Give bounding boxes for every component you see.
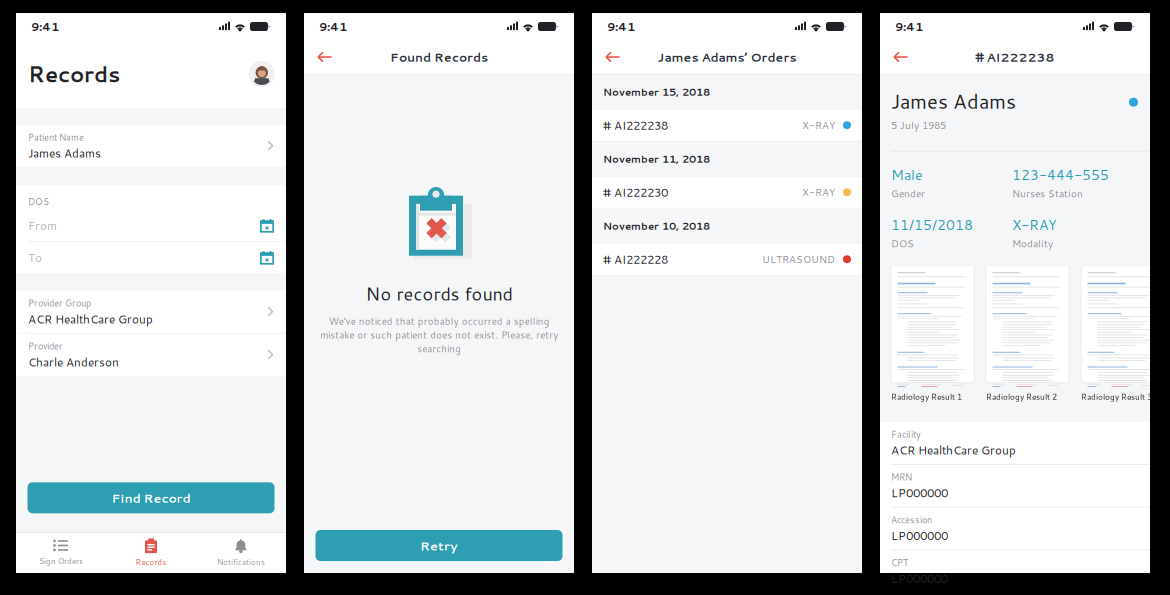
staticText: Facility (891, 428, 921, 441)
staticText: Provider Group (28, 297, 91, 309)
button[interactable]: Profile (250, 62, 274, 86)
staticText: Found Records (390, 48, 488, 66)
staticText: November 11, 2018 (603, 151, 710, 166)
staticText: ACR HealthCare Group (891, 442, 1016, 458)
staticText: Nurses Station (1012, 186, 1083, 201)
staticText: Provider (28, 340, 63, 352)
staticText: Accession (891, 513, 932, 526)
staticText: November 10, 2018 (603, 218, 710, 233)
staticText: James Adams (28, 145, 101, 161)
staticText: Patient Name (28, 131, 84, 144)
staticText: DOS (891, 236, 914, 251)
staticText: To (28, 249, 42, 266)
staticText: November 15, 2018 (603, 84, 710, 99)
button[interactable]: Back (304, 40, 346, 74)
button[interactable]: Find Record (27, 482, 274, 513)
staticText: MRN (891, 470, 912, 483)
staticText: Records (135, 556, 166, 567)
staticText: 9:41 (31, 18, 59, 35)
button[interactable]: Provider Group (16, 291, 286, 333)
button[interactable]: Retry (315, 530, 562, 561)
button[interactable]: # AI222228 (592, 243, 862, 276)
staticText: Male (891, 165, 923, 184)
button[interactable]: From (16, 210, 286, 241)
button[interactable]: Notifications (196, 533, 286, 573)
staticText: X-RAY (802, 118, 835, 132)
staticText: No records found (365, 281, 512, 306)
staticText: 11/15/2018 (891, 215, 973, 234)
button[interactable]: Provider (16, 334, 286, 376)
staticText: We've noticed that probably occurred a s… (320, 314, 558, 355)
staticText: Radiology Result 2 (986, 391, 1057, 402)
staticText: 9:41 (319, 18, 347, 35)
button[interactable]: Records (106, 533, 196, 573)
staticText: Modality (1012, 236, 1053, 251)
button[interactable]: Sign Orders (16, 533, 106, 573)
button[interactable]: # AI222230 (592, 176, 862, 209)
staticText: Charle Anderson (28, 353, 119, 370)
button[interactable]: Radiology Result 2 (986, 266, 1070, 402)
staticText: ULTRASOUND (762, 252, 835, 266)
staticText: Sign Orders (39, 555, 83, 566)
button[interactable]: Radiology Result 3 (1081, 266, 1165, 402)
staticText: LP000000 (891, 527, 948, 544)
staticText: Records (28, 59, 120, 89)
staticText: 5 July 1985 (891, 118, 946, 132)
staticText: CPT (891, 556, 908, 569)
button[interactable]: # AI222238 (592, 109, 862, 142)
staticText: Gender (891, 186, 925, 201)
staticText: James Adams (891, 87, 1016, 115)
staticText: 123-444-555 (1012, 165, 1109, 184)
staticText: # AI222238 (603, 117, 668, 134)
staticText: Radiology Result 3 (1081, 391, 1152, 402)
staticText: From (28, 217, 57, 234)
button[interactable]: Back (880, 40, 922, 74)
staticText: # AI222230 (603, 184, 668, 201)
staticText: Retry (420, 536, 458, 554)
staticText: Find Record (111, 489, 190, 507)
staticText: X-RAY (1012, 215, 1057, 234)
button[interactable]: Back (592, 40, 634, 74)
staticText: # AI222238 (975, 48, 1054, 66)
staticText: # AI222228 (603, 251, 668, 268)
staticText: 9:41 (607, 18, 635, 35)
staticText: X-RAY (802, 185, 835, 199)
staticText: Notifications (217, 556, 265, 567)
staticText: Radiology Result 1 (891, 391, 962, 402)
button[interactable]: Patient Name (16, 125, 286, 167)
staticText: DOS (28, 195, 49, 208)
staticText: LP000000 (891, 570, 948, 587)
staticText: ACR HealthCare Group (28, 310, 153, 327)
staticText: 9:41 (895, 18, 923, 35)
staticText: LP000000 (891, 484, 948, 501)
button[interactable]: Radiology Result 1 (891, 266, 975, 402)
button[interactable]: To (16, 242, 286, 273)
staticText: James Adams’ Orders (657, 48, 796, 66)
